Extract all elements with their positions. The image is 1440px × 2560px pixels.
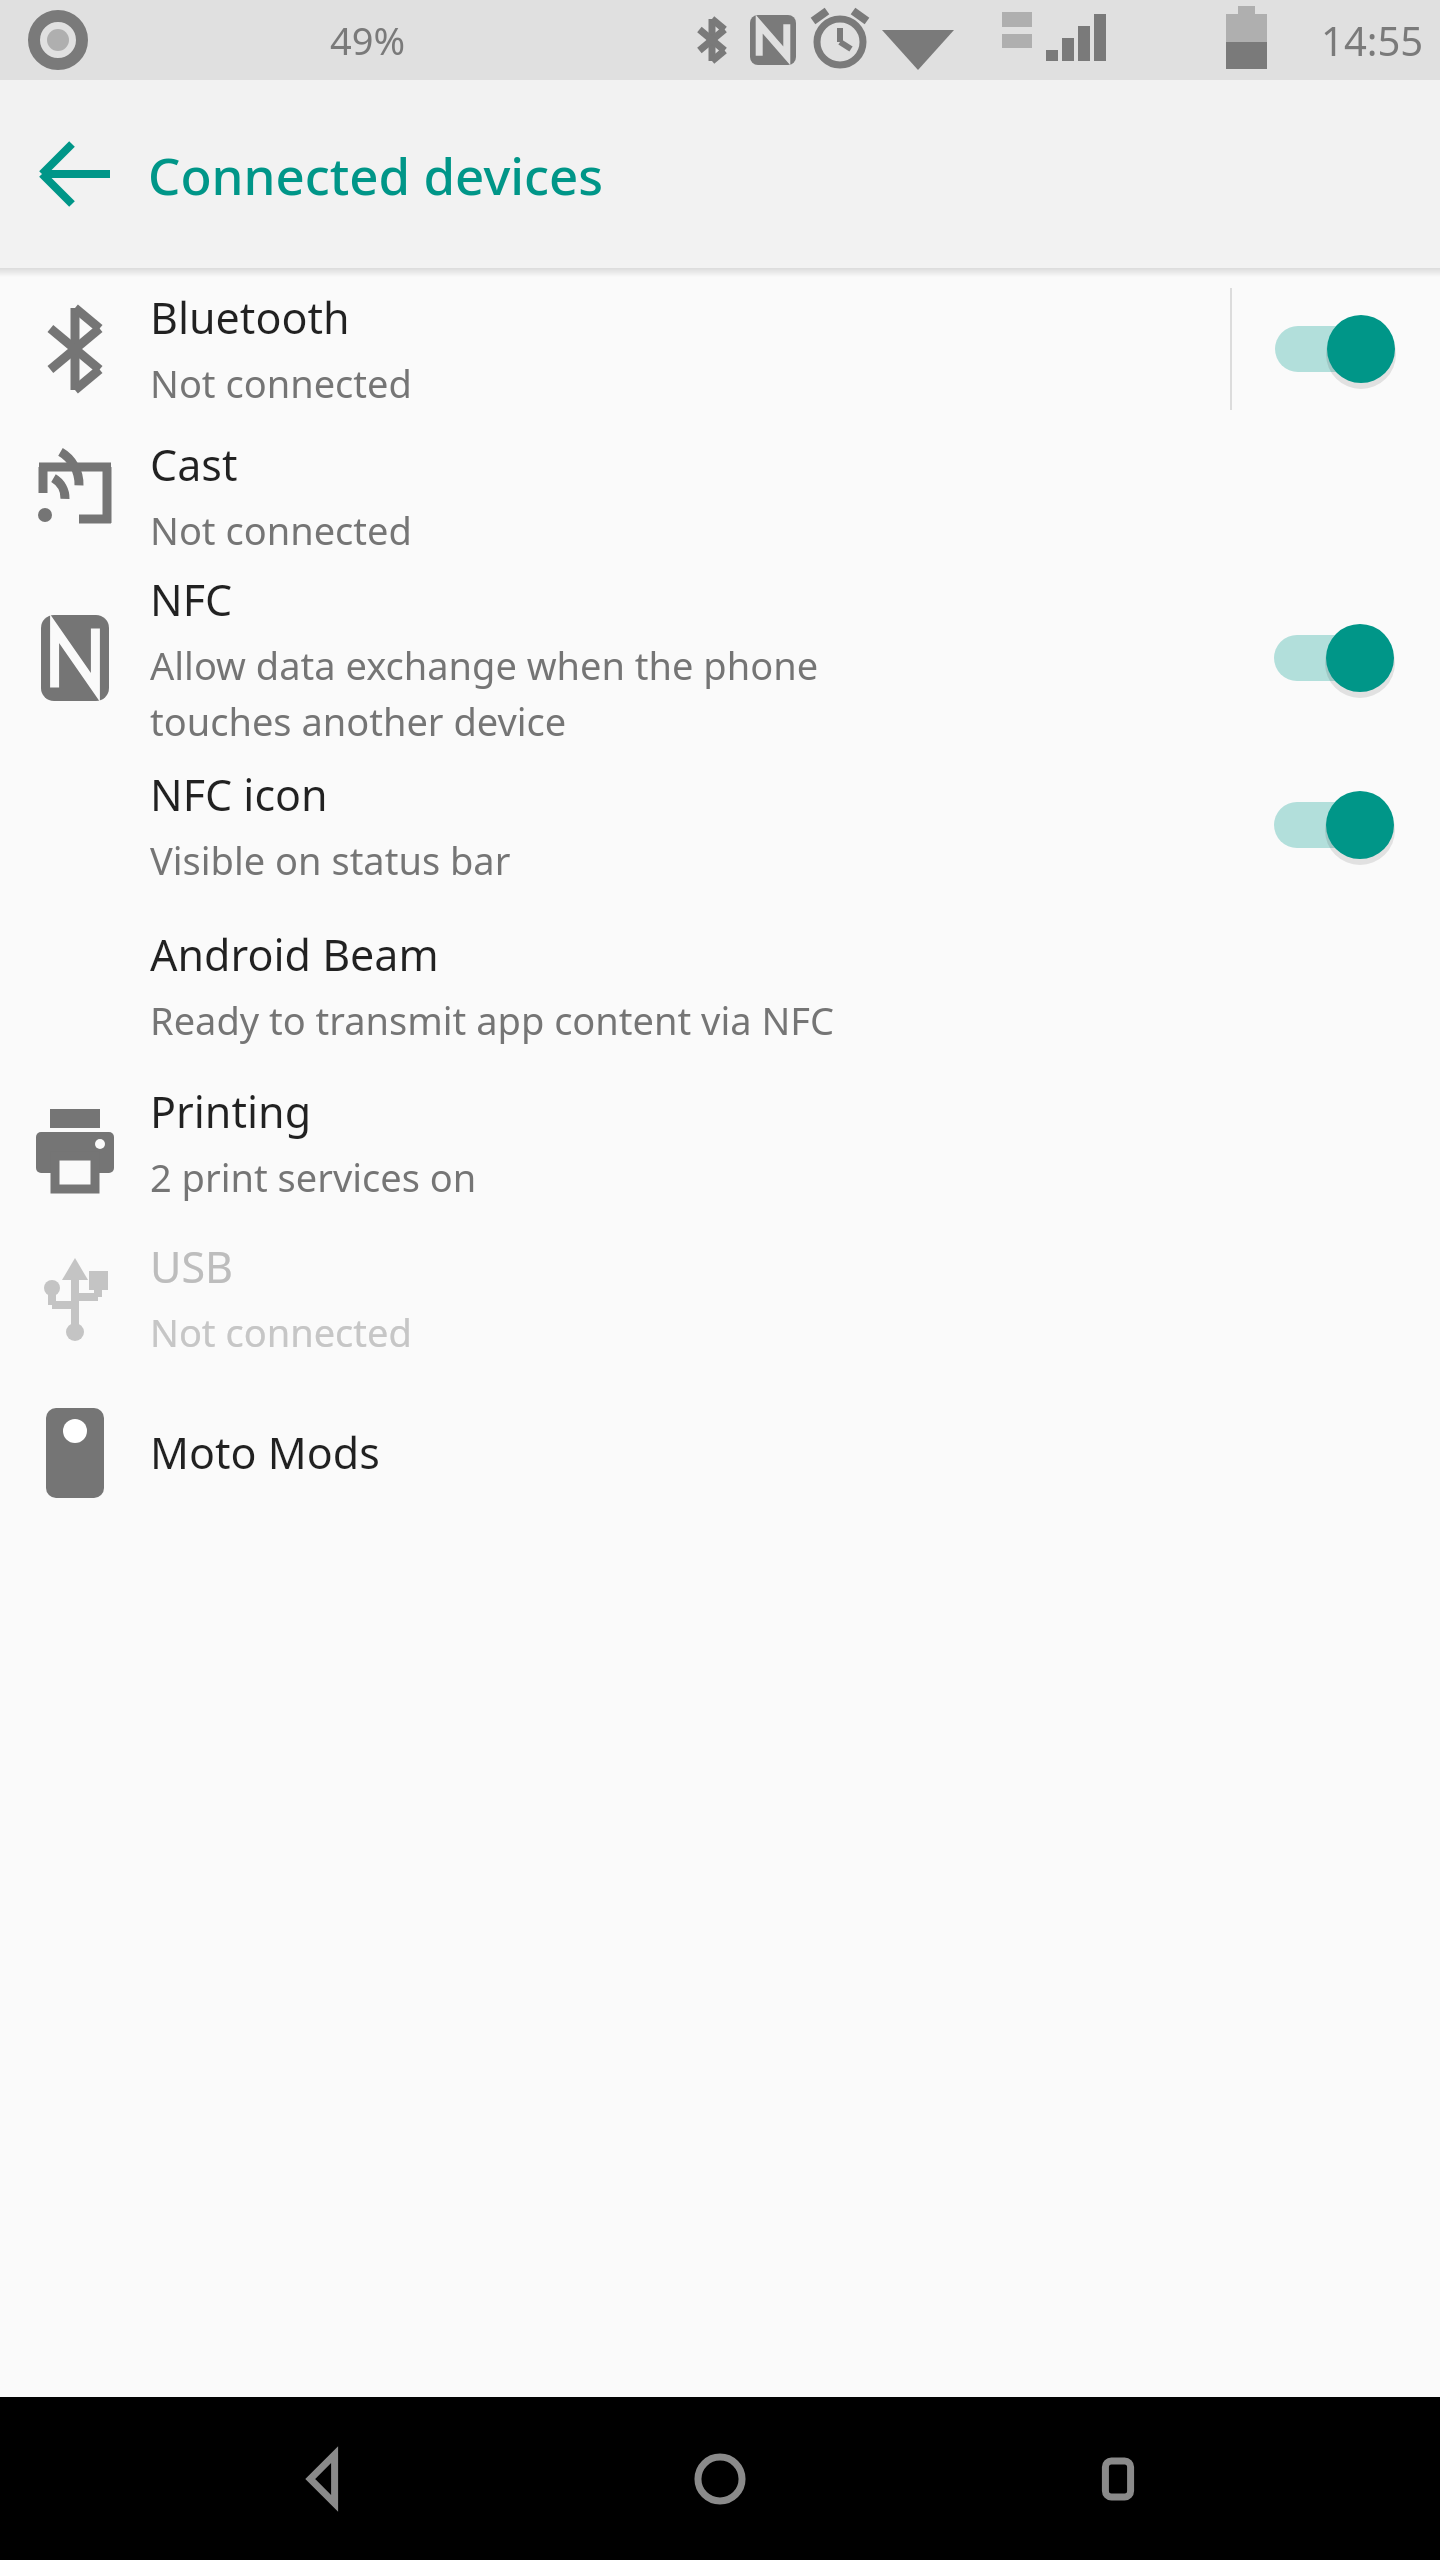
button[interactable]: Back [26, 124, 126, 224]
staticText: NFC [150, 570, 233, 629]
staticText: NFC icon [150, 765, 328, 824]
button[interactable]: Bluetooth [0, 277, 1440, 420]
staticText: Connected devices [148, 140, 604, 209]
staticText: 14:55 [1321, 13, 1424, 67]
staticText: Bluetooth [150, 288, 350, 347]
staticText: Not connected [150, 504, 412, 556]
button[interactable]: Printing [0, 1065, 1440, 1220]
staticText: 2 print services on [150, 1151, 477, 1203]
button[interactable]: NFC [0, 570, 1440, 745]
staticText: 49% [330, 14, 406, 66]
staticText: Not connected [150, 1306, 412, 1358]
staticText: 49% [366, 40, 368, 41]
staticText: Ready to transmit app content via NFC [150, 994, 835, 1046]
button[interactable]: NFC icon [0, 745, 1440, 905]
button[interactable]: NFC switch [1250, 603, 1420, 713]
button[interactable]: Moto Mods [0, 1375, 1440, 1530]
button[interactable]: USB [0, 1220, 1440, 1375]
staticText: Cast [150, 435, 238, 494]
button[interactable]: Home [645, 2404, 795, 2554]
button[interactable]: NFC icon switch [1250, 770, 1420, 880]
staticText: Moto Mods [150, 1423, 380, 1482]
button[interactable]: Recent apps [1043, 2404, 1193, 2554]
button[interactable]: Bluetooth switch [1251, 294, 1421, 404]
staticText: Visible on status bar [150, 834, 511, 886]
staticText: Printing [150, 1082, 312, 1141]
staticText: Not connected [150, 357, 412, 409]
staticText: Allow data exchange when the phone touch… [150, 639, 819, 745]
button[interactable]: Cast [0, 420, 1440, 570]
button[interactable]: Back [248, 2404, 398, 2554]
button[interactable]: Android Beam [0, 905, 1440, 1065]
staticText: USB [150, 1237, 233, 1296]
staticText: Android Beam [150, 925, 439, 984]
